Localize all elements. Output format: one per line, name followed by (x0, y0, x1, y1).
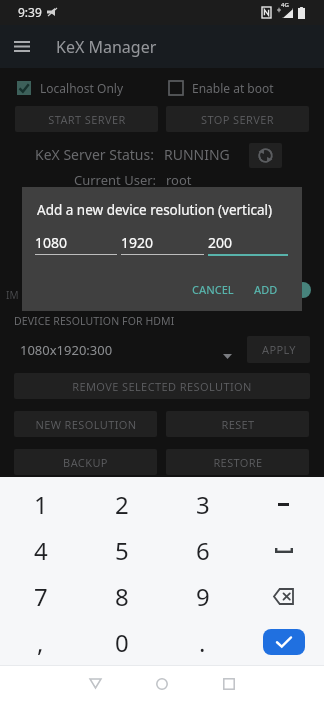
staticText: 1080 (35, 233, 68, 252)
button[interactable]: Enter (243, 619, 324, 665)
staticText: Localhost Only (40, 80, 124, 96)
button[interactable]: 1 (0, 481, 81, 527)
button[interactable]: 4 (0, 527, 81, 573)
button[interactable]: 7 (0, 573, 81, 619)
staticText: 0 (115, 626, 129, 659)
button[interactable]: Space (243, 527, 324, 573)
staticText: IM (6, 288, 19, 302)
button[interactable]: Backspace (243, 573, 324, 619)
staticText: , (37, 626, 44, 659)
staticText: root (166, 171, 192, 189)
button[interactable]: APPLY (247, 336, 310, 363)
staticText: 200 (208, 233, 233, 252)
staticText: 1920 (121, 233, 154, 252)
button[interactable]: Minus (243, 481, 324, 527)
button[interactable]: Refresh status (249, 143, 282, 168)
staticText: 6 (196, 534, 210, 567)
button[interactable]: 8 (81, 573, 162, 619)
staticText: NEW RESOLUTION (35, 417, 137, 432)
staticText: 1080x1920:300 (20, 341, 113, 359)
button[interactable]: 3 (162, 481, 243, 527)
button[interactable]: Localhost Only (17, 80, 124, 96)
button[interactable]: Recent apps (209, 665, 249, 702)
staticText: RESET (221, 417, 255, 432)
staticText: DEVICE RESOLUTION FOR HDMI (14, 314, 175, 328)
staticText: KeX Manager (56, 36, 157, 58)
button[interactable]: ADD (246, 276, 286, 303)
button[interactable]: START SERVER (15, 106, 158, 132)
staticText: Current User: (74, 171, 157, 189)
staticText: RUNNING (164, 145, 230, 164)
staticText: 1 (34, 488, 48, 521)
staticText: REMOVE SELECTED RESOLUTION (72, 379, 252, 394)
button[interactable]: BACKUP (14, 449, 157, 475)
staticText: RESTORE (213, 455, 263, 470)
staticText: 3 (196, 488, 210, 521)
button[interactable]: . (162, 619, 243, 665)
staticText: 4 (34, 534, 48, 567)
button[interactable]: Back (75, 665, 115, 702)
staticText: . (199, 626, 206, 659)
button[interactable]: RESTORE (166, 449, 309, 475)
staticText: 7 (34, 580, 48, 613)
button[interactable]: Open navigation menu (6, 25, 38, 68)
staticText: 9:39 (18, 4, 42, 20)
staticText: STOP SERVER (201, 112, 274, 127)
button[interactable]: 5 (81, 527, 162, 573)
button[interactable]: REMOVE SELECTED RESOLUTION (14, 373, 310, 399)
button[interactable]: 0 (81, 619, 162, 665)
staticText: APPLY (262, 342, 296, 357)
button[interactable]: Enter (263, 629, 305, 655)
button[interactable]: Enable at boot (169, 80, 274, 96)
button[interactable]: 6 (162, 527, 243, 573)
button[interactable]: 9 (162, 573, 243, 619)
staticText: BACKUP (63, 455, 108, 470)
button[interactable]: Add resolution (295, 282, 311, 298)
staticText: START SERVER (48, 112, 126, 127)
staticText: 4G (281, 1, 289, 9)
button[interactable]: Home (142, 665, 182, 702)
button[interactable]: RESET (166, 411, 309, 437)
button[interactable]: STOP SERVER (166, 106, 309, 132)
staticText: CANCEL (192, 282, 234, 297)
staticText: 8 (115, 580, 129, 613)
staticText: Enable at boot (192, 80, 274, 96)
staticText: 5 (115, 534, 129, 567)
staticText: KeX Server Status: (35, 145, 154, 164)
staticText: 2 (115, 488, 129, 521)
button[interactable]: 2 (81, 481, 162, 527)
button[interactable]: , (0, 619, 81, 665)
staticText: 9 (196, 580, 210, 613)
staticText: Add a new device resolution (vertical) (37, 201, 273, 219)
button[interactable]: NEW RESOLUTION (14, 411, 157, 437)
button[interactable]: Select resolution (215, 344, 239, 368)
button[interactable]: CANCEL (184, 276, 242, 303)
staticText: ADD (254, 282, 278, 297)
